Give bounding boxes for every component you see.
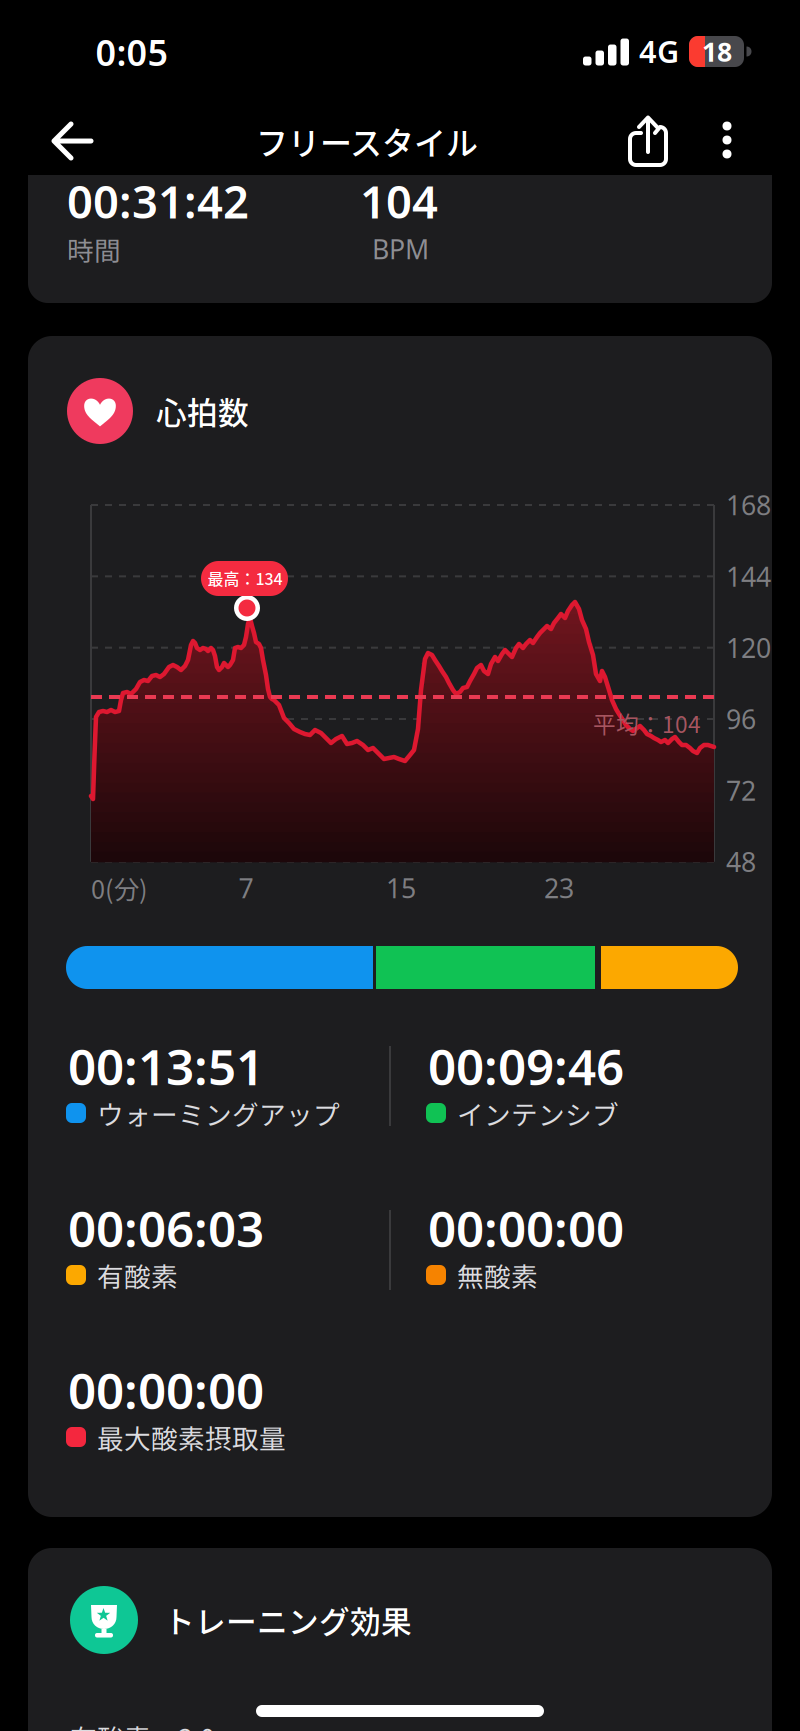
- staticText: 0:05: [95, 28, 168, 76]
- staticText: 144: [726, 559, 771, 594]
- staticText: 00:09:46: [428, 1033, 624, 1099]
- staticText: インテンシブ: [457, 1094, 619, 1132]
- staticText: 15: [386, 870, 416, 906]
- staticText: 最大酸素摂取量: [97, 1418, 286, 1456]
- button[interactable]: Back: [43, 111, 103, 171]
- staticText: 最高：134: [207, 566, 282, 590]
- staticText: 0(分): [91, 870, 148, 906]
- staticText: 00:00:00: [428, 1195, 624, 1261]
- staticText: フリースタイル: [256, 118, 478, 164]
- staticText: 有酸素 3.0: [70, 1718, 215, 1731]
- staticText: 00:06:03: [68, 1195, 264, 1261]
- button[interactable]: More: [705, 110, 749, 170]
- staticText: ウォーミングアップ: [97, 1094, 340, 1132]
- staticText: 48: [726, 844, 756, 879]
- staticText: 心拍数: [156, 389, 249, 433]
- staticText: 平均：104: [593, 707, 701, 739]
- staticText: 有酸素: [97, 1256, 178, 1294]
- staticText: 23: [544, 870, 574, 906]
- staticText: 00:00:00: [68, 1357, 264, 1423]
- staticText: 96: [726, 701, 756, 737]
- staticText: 104: [360, 171, 438, 231]
- staticText: 120: [726, 630, 771, 665]
- staticText: 無酸素: [457, 1256, 538, 1294]
- staticText: 7: [238, 870, 253, 906]
- staticText: BPM: [372, 231, 429, 267]
- staticText: 00:31:42: [67, 171, 249, 231]
- staticText: 72: [726, 773, 756, 808]
- staticText: 168: [726, 487, 771, 523]
- staticText: 時間: [67, 230, 121, 268]
- button[interactable]: Share: [618, 108, 678, 168]
- staticText: 4G: [639, 31, 679, 71]
- staticText: トレーニング効果: [164, 1598, 412, 1642]
- staticText: 18: [702, 34, 732, 69]
- staticText: 00:13:51: [68, 1033, 264, 1099]
